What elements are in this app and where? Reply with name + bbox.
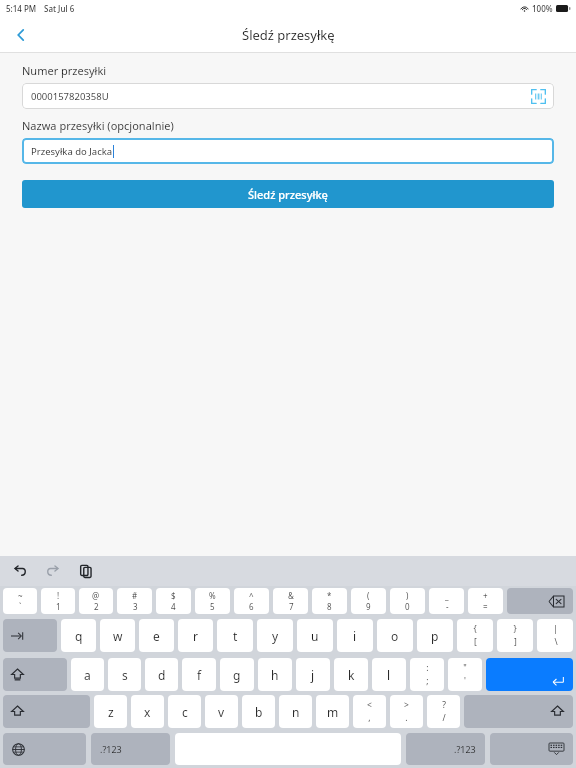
button[interactable]: d [145, 658, 178, 691]
button[interactable]: Enter [486, 658, 573, 691]
staticText: 100% [532, 3, 553, 14]
button[interactable]: m [316, 695, 349, 728]
button[interactable]: $ [156, 588, 191, 614]
button[interactable]: % [195, 588, 230, 614]
button[interactable]: { [457, 619, 493, 652]
button[interactable]: Undo [10, 561, 30, 581]
staticText: .?123 [454, 743, 476, 755]
staticText: m [327, 704, 339, 720]
button[interactable]: u [297, 619, 333, 652]
button[interactable]: b [242, 695, 275, 728]
staticText: j [311, 667, 315, 683]
staticText: 7 [289, 601, 294, 612]
button[interactable]: } [497, 619, 533, 652]
button[interactable]: ( [351, 588, 386, 614]
staticText: 5 [210, 601, 215, 612]
staticText: 0000157820358U [31, 90, 109, 103]
button[interactable]: s [108, 658, 141, 691]
button[interactable]: Scan barcode [528, 86, 548, 106]
staticText: i [353, 628, 357, 644]
button[interactable]: Change language [3, 733, 86, 765]
staticText: 1 [56, 601, 61, 612]
staticText: ? [442, 699, 446, 711]
button[interactable]: l [372, 658, 406, 691]
button[interactable]: | [537, 619, 573, 652]
button[interactable]: < [353, 695, 386, 728]
staticText: ! [57, 590, 60, 601]
staticText: ` [19, 601, 22, 612]
staticText: ' [464, 675, 466, 687]
staticText: Nazwa przesyłki (opcjonalnie) [22, 118, 174, 133]
button[interactable]: a [71, 658, 104, 691]
button[interactable]: * [312, 588, 347, 614]
button[interactable]: Hide keyboard [490, 733, 573, 765]
staticText: 3 [133, 601, 138, 612]
staticText: Numer przesyłki [22, 63, 107, 78]
button[interactable]: f [182, 658, 216, 691]
button[interactable]: ~ [3, 588, 37, 614]
staticText: .?123 [100, 743, 122, 755]
staticText: 8 [327, 601, 332, 612]
button[interactable]: # [117, 588, 152, 614]
button[interactable]: j [296, 658, 330, 691]
staticText: % [209, 590, 216, 601]
staticText: Śledź przesyłkę [242, 26, 335, 44]
staticText: 4 [171, 601, 176, 612]
button[interactable]: Redo [43, 561, 63, 581]
button[interactable]: & [273, 588, 308, 614]
staticText: = [483, 601, 488, 612]
button[interactable]: .?123 [91, 733, 170, 765]
button[interactable]: ^ [234, 588, 269, 614]
button[interactable]: v [205, 695, 238, 728]
staticText: _ [445, 590, 449, 601]
staticText: 5:14 PM [6, 3, 37, 14]
button[interactable]: Tab [3, 619, 57, 652]
button[interactable]: Shift [464, 695, 573, 728]
staticText: / [442, 712, 446, 724]
button[interactable]: Śledź przesyłkę [22, 180, 554, 208]
button[interactable]: z [94, 695, 127, 728]
button[interactable]: x [131, 695, 164, 728]
staticText: 6 [249, 601, 254, 612]
staticText: , [368, 712, 371, 724]
staticText: + [483, 590, 488, 601]
button[interactable]: w [100, 619, 135, 652]
button[interactable]: h [258, 658, 292, 691]
button[interactable]: Back [4, 18, 38, 52]
staticText: b [255, 704, 263, 720]
button[interactable]: ? [427, 695, 460, 728]
button[interactable]: Przesyłka do Jacka [22, 138, 554, 164]
staticText: - [446, 601, 449, 612]
button[interactable]: ) [390, 588, 425, 614]
button[interactable]: Backspace [507, 588, 573, 614]
button[interactable]: " [448, 658, 482, 691]
button[interactable]: > [390, 695, 423, 728]
button[interactable]: q [61, 619, 96, 652]
button[interactable]: n [279, 695, 312, 728]
button[interactable]: + [468, 588, 503, 614]
button[interactable]: .?123 [406, 733, 485, 765]
button[interactable]: y [257, 619, 293, 652]
button[interactable]: p [417, 619, 453, 652]
button[interactable]: : [410, 658, 444, 691]
button[interactable]: i [337, 619, 373, 652]
button[interactable]: e [139, 619, 174, 652]
button[interactable]: g [220, 658, 254, 691]
button[interactable]: 0000157820358U [22, 83, 554, 109]
button[interactable]: Shift [3, 658, 67, 691]
button[interactable]: Shift [3, 695, 90, 728]
button[interactable]: Paste [76, 561, 96, 581]
button[interactable]: ! [41, 588, 75, 614]
button[interactable]: @ [79, 588, 113, 614]
button[interactable]: _ [429, 588, 464, 614]
staticText: ) [406, 590, 409, 601]
button[interactable]: o [377, 619, 413, 652]
staticText: \ [554, 636, 558, 648]
staticText: u [311, 628, 319, 644]
button[interactable]: r [178, 619, 213, 652]
button[interactable]: k [334, 658, 368, 691]
button[interactable]: t [217, 619, 253, 652]
staticText: h [271, 667, 279, 683]
button[interactable]: c [168, 695, 201, 728]
